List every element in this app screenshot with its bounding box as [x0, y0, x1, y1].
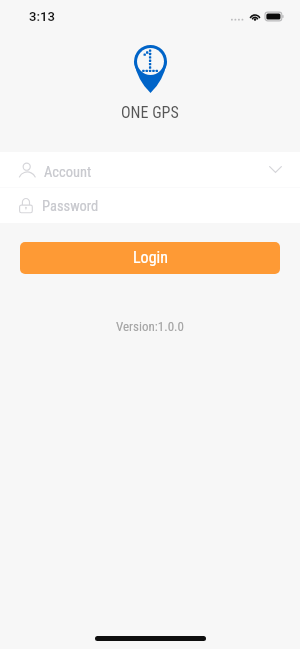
staticText: Login [133, 248, 168, 267]
button[interactable]: Account [0, 152, 300, 187]
staticText: Account [44, 164, 92, 181]
button[interactable]: Show saved accounts [254, 152, 296, 187]
staticText: Password [42, 198, 99, 215]
staticText: 3:13 [29, 9, 55, 24]
button[interactable]: Login [20, 242, 280, 274]
staticText: ONE GPS [121, 103, 179, 122]
staticText: Version:1.0.0 [116, 319, 184, 334]
button[interactable]: Password [0, 188, 300, 223]
